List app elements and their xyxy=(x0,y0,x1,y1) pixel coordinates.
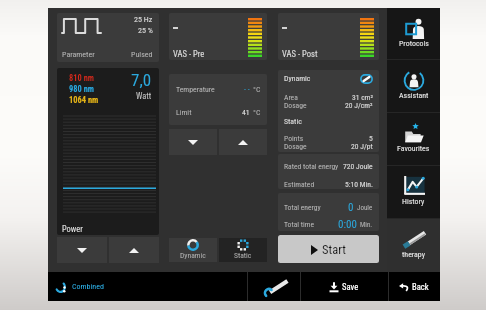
staticText: Dosage xyxy=(284,142,307,151)
button[interactable]: Favourites xyxy=(387,113,440,166)
staticText: Total time xyxy=(284,220,315,229)
staticText: Dynamic xyxy=(180,251,206,260)
staticText: 1064 nm xyxy=(69,95,99,105)
staticText: Min. xyxy=(360,221,373,229)
staticText: 7,0 xyxy=(131,70,152,90)
staticText: 31 cm² xyxy=(352,93,373,102)
button[interactable]: Rated total energy xyxy=(278,154,379,189)
staticText: 980 nm xyxy=(69,84,95,94)
staticText: 41 xyxy=(242,108,250,117)
staticText: 25 Hz xyxy=(134,15,153,24)
staticText: Total energy xyxy=(284,203,321,212)
button[interactable]: Total energy xyxy=(278,193,379,231)
button[interactable]: VAS - Pre xyxy=(169,13,267,60)
staticText: Dynamic xyxy=(284,74,311,83)
staticText: Dosage xyxy=(284,101,307,110)
button[interactable]: Start xyxy=(278,235,379,263)
staticText: Rated total energy xyxy=(284,162,339,171)
staticText: Protocols xyxy=(399,39,429,48)
staticText: Parameter xyxy=(62,50,95,59)
staticText: Joule xyxy=(357,204,373,212)
staticText: History xyxy=(402,197,425,206)
staticText: Watt xyxy=(136,91,152,101)
staticText: VAS - Pre xyxy=(173,49,205,59)
staticText: Assistant xyxy=(399,91,429,100)
staticText: 20 J/pt xyxy=(351,142,373,151)
staticText: 0 xyxy=(348,201,354,214)
staticText: Save xyxy=(342,282,359,292)
staticText: - - xyxy=(244,85,250,94)
button[interactable]: Combined xyxy=(48,272,247,301)
staticText: therapy xyxy=(402,250,426,259)
button[interactable]: Decrease xyxy=(169,129,217,155)
button[interactable]: Protocols xyxy=(387,8,440,60)
staticText: Combined xyxy=(72,282,104,291)
staticText: Back xyxy=(412,282,429,292)
staticText: 20 J/cm² xyxy=(345,101,373,110)
staticText: 5:10 Min. xyxy=(345,180,373,189)
button[interactable]: 25 Hz xyxy=(57,13,159,62)
button[interactable]: Back xyxy=(388,272,440,301)
staticText: Start xyxy=(322,242,346,257)
staticText: Static xyxy=(234,251,252,260)
staticText: 810 nm xyxy=(69,73,95,83)
staticText: Pulsed xyxy=(131,50,153,59)
button[interactable]: Decrease xyxy=(57,237,107,263)
staticText: VAS - Post xyxy=(282,49,318,59)
button[interactable]: Dynamic xyxy=(278,70,379,152)
button[interactable]: VAS - Post xyxy=(278,13,379,60)
staticText: 720 Joule xyxy=(343,162,373,171)
button[interactable]: therapy xyxy=(387,219,440,272)
staticText: 0:00 xyxy=(338,218,357,231)
staticText: °C xyxy=(253,85,261,94)
button[interactable]: 810 nm xyxy=(57,68,159,235)
staticText: Area xyxy=(284,93,298,102)
staticText: °C xyxy=(253,108,261,117)
staticText: Temperature xyxy=(176,85,215,94)
staticText: Limit xyxy=(176,108,192,117)
button[interactable]: Assistant xyxy=(387,60,440,113)
staticText: Static xyxy=(284,117,302,126)
staticText: Power xyxy=(62,224,83,234)
button[interactable]: History xyxy=(387,166,440,219)
button[interactable]: Static xyxy=(219,238,267,262)
staticText: 25 % xyxy=(138,26,153,35)
button[interactable]: Save xyxy=(300,272,388,301)
button[interactable]: Dynamic xyxy=(169,238,217,262)
button[interactable]: Temperature xyxy=(169,74,267,125)
staticText: Favourites xyxy=(397,144,430,153)
button[interactable]: Increase xyxy=(219,129,267,155)
staticText: Points xyxy=(284,134,304,143)
staticText: 5 xyxy=(369,134,373,143)
button[interactable]: Handpiece xyxy=(247,272,300,301)
button[interactable]: Increase xyxy=(109,237,159,263)
staticText: Estimated xyxy=(284,180,315,189)
